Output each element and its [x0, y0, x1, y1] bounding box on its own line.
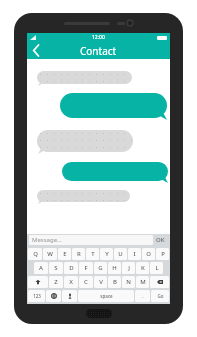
staticText: Z — [54, 278, 58, 286]
button[interactable]: Back — [27, 42, 45, 59]
button[interactable]: K — [136, 262, 149, 274]
button[interactable]: H — [108, 262, 121, 274]
staticText: . — [142, 293, 144, 300]
staticText: T — [91, 250, 95, 258]
staticText: U — [118, 250, 123, 258]
button[interactable]: G — [94, 262, 107, 274]
button[interactable]: O — [142, 248, 155, 260]
staticText: D — [69, 264, 74, 272]
button[interactable]: I — [128, 248, 141, 260]
button[interactable]: T — [86, 248, 99, 260]
staticText: Go — [157, 293, 164, 299]
button[interactable]: Q — [28, 248, 42, 260]
button[interactable]: 123 — [28, 290, 45, 302]
staticText: F — [84, 264, 88, 272]
staticText: X — [69, 278, 73, 286]
button[interactable]: Change language — [46, 290, 61, 302]
button[interactable]: space — [78, 290, 134, 302]
button[interactable]: Message... — [29, 235, 153, 245]
button[interactable]: Voice input — [62, 290, 77, 302]
button[interactable]: D — [64, 262, 78, 274]
button[interactable]: X — [64, 276, 78, 288]
staticText: N — [126, 278, 131, 286]
button[interactable]: Received message — [37, 71, 132, 84]
staticText: R — [77, 250, 81, 258]
button[interactable]: Z — [49, 276, 63, 288]
staticText: Q — [33, 250, 38, 258]
staticText: M — [140, 278, 146, 286]
button[interactable]: A — [34, 262, 48, 274]
staticText: O — [146, 250, 151, 258]
button[interactable]: U — [114, 248, 127, 260]
staticText: W — [47, 250, 53, 258]
button[interactable]: B — [108, 276, 121, 288]
staticText: space — [100, 293, 113, 299]
button[interactable]: Go — [151, 290, 169, 302]
button[interactable]: W — [43, 248, 57, 260]
button[interactable]: C — [79, 276, 93, 288]
button[interactable]: Received message — [37, 130, 133, 152]
staticText: L — [155, 264, 159, 272]
button[interactable]: V — [94, 276, 107, 288]
button[interactable]: J — [122, 262, 135, 274]
staticText: OK — [156, 236, 165, 244]
staticText: K — [141, 264, 145, 272]
button[interactable]: Sent message — [60, 93, 167, 118]
button[interactable]: N — [122, 276, 135, 288]
button[interactable]: M — [136, 276, 149, 288]
button[interactable]: Shift — [28, 276, 48, 288]
staticText: J — [128, 264, 130, 272]
button[interactable]: R — [72, 248, 85, 260]
button[interactable]: . — [135, 290, 150, 302]
button[interactable]: Received message — [37, 190, 130, 202]
staticText: A — [39, 264, 43, 272]
staticText: 12:00 — [92, 34, 105, 41]
staticText: 123 — [33, 293, 41, 299]
staticText: E — [63, 250, 67, 258]
staticText: P — [161, 250, 165, 258]
staticText: Y — [105, 250, 109, 258]
button[interactable]: F — [79, 262, 93, 274]
staticText: H — [112, 264, 117, 272]
staticText: C — [84, 278, 88, 286]
button[interactable]: Backspace — [150, 276, 169, 288]
button[interactable]: E — [58, 248, 71, 260]
button[interactable]: P — [156, 248, 169, 260]
staticText: B — [113, 278, 117, 286]
button[interactable]: OK — [153, 235, 168, 245]
staticText: G — [98, 264, 103, 272]
button[interactable]: L — [150, 262, 163, 274]
button[interactable]: S — [49, 262, 63, 274]
staticText: I — [133, 250, 136, 258]
staticText: Message... — [32, 236, 62, 244]
staticText: V — [99, 278, 103, 286]
button[interactable]: Y — [100, 248, 113, 260]
button[interactable]: Sent message — [62, 162, 168, 181]
staticText: S — [54, 264, 58, 272]
staticText: Contact — [80, 44, 117, 58]
